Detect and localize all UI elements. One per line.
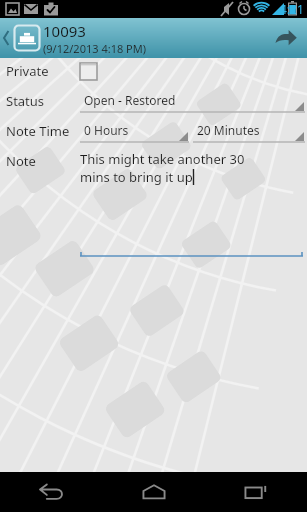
button[interactable]: 20 Minutes: [193, 118, 305, 144]
button[interactable]: Back: [0, 472, 103, 512]
button[interactable]: Recent apps: [205, 472, 307, 512]
staticText: 10093: [43, 21, 86, 41]
button[interactable]: Open - Restored: [80, 88, 305, 114]
button[interactable]: Navigate up: [0, 18, 46, 58]
staticText: 4:21: [280, 1, 304, 17]
staticText: Status: [6, 92, 45, 110]
staticText: 20 Minutes: [197, 122, 260, 138]
button[interactable]: Home: [103, 472, 205, 512]
staticText: Open - Restored: [84, 92, 176, 108]
staticText: mins to bring it up: [80, 168, 193, 186]
staticText: Note Time: [6, 122, 70, 140]
staticText: (9/12/2013 4:18 PM): [43, 41, 147, 56]
button[interactable]: This might take another 30: [80, 150, 303, 258]
button[interactable]: 0 Hours: [80, 118, 189, 144]
other: Private checkbox: [80, 63, 97, 80]
staticText: Note: [6, 152, 36, 170]
staticText: This might take another 30: [80, 150, 245, 168]
button[interactable]: Forward: [265, 18, 307, 58]
button[interactable]: Private: [0, 58, 307, 84]
staticText: 0 Hours: [84, 122, 129, 138]
staticText: Private: [6, 62, 49, 80]
